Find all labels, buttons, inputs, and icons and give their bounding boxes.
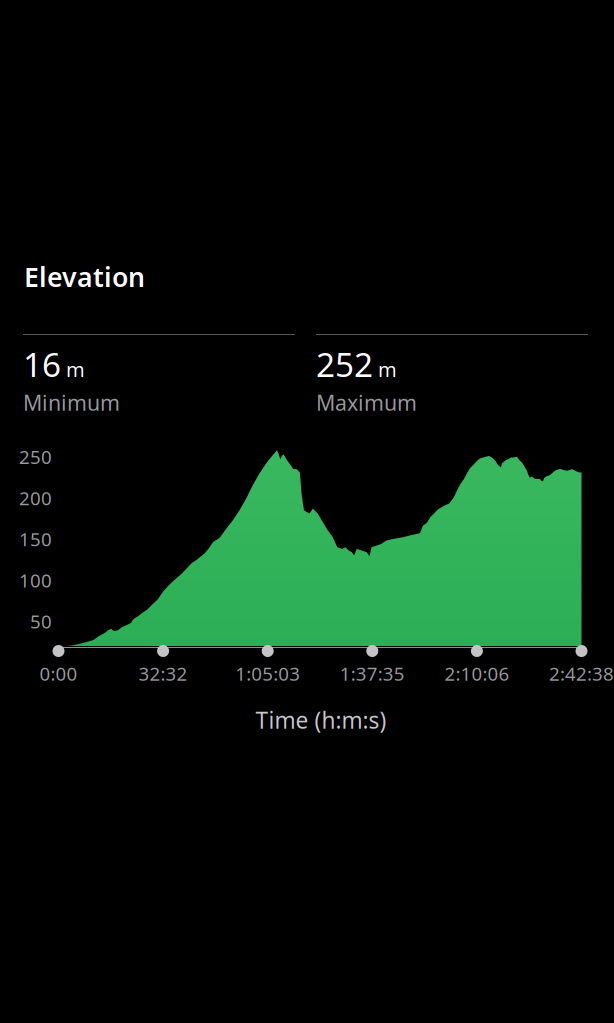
staticText: 2:10:06 — [444, 661, 509, 686]
staticText: 16 — [23, 342, 61, 386]
staticText: Elevation — [24, 259, 145, 294]
staticText: Time (h:m:s) — [255, 705, 386, 735]
staticText: 32:32 — [139, 661, 188, 686]
staticText: Minimum — [23, 388, 120, 417]
staticText: m — [378, 356, 397, 383]
staticText: 50 — [30, 609, 52, 634]
staticText: 250 — [19, 444, 52, 469]
staticText: 2:42:38 — [549, 661, 614, 686]
staticText: 0:00 — [39, 661, 77, 686]
staticText: m — [66, 356, 85, 383]
staticText: 252 — [316, 342, 373, 386]
staticText: Maximum — [316, 388, 417, 417]
staticText: 200 — [19, 486, 52, 510]
staticText: 1:05:03 — [235, 661, 300, 686]
staticText: 100 — [19, 568, 52, 593]
staticText: 150 — [19, 527, 52, 551]
staticText: 1:37:35 — [340, 661, 405, 686]
